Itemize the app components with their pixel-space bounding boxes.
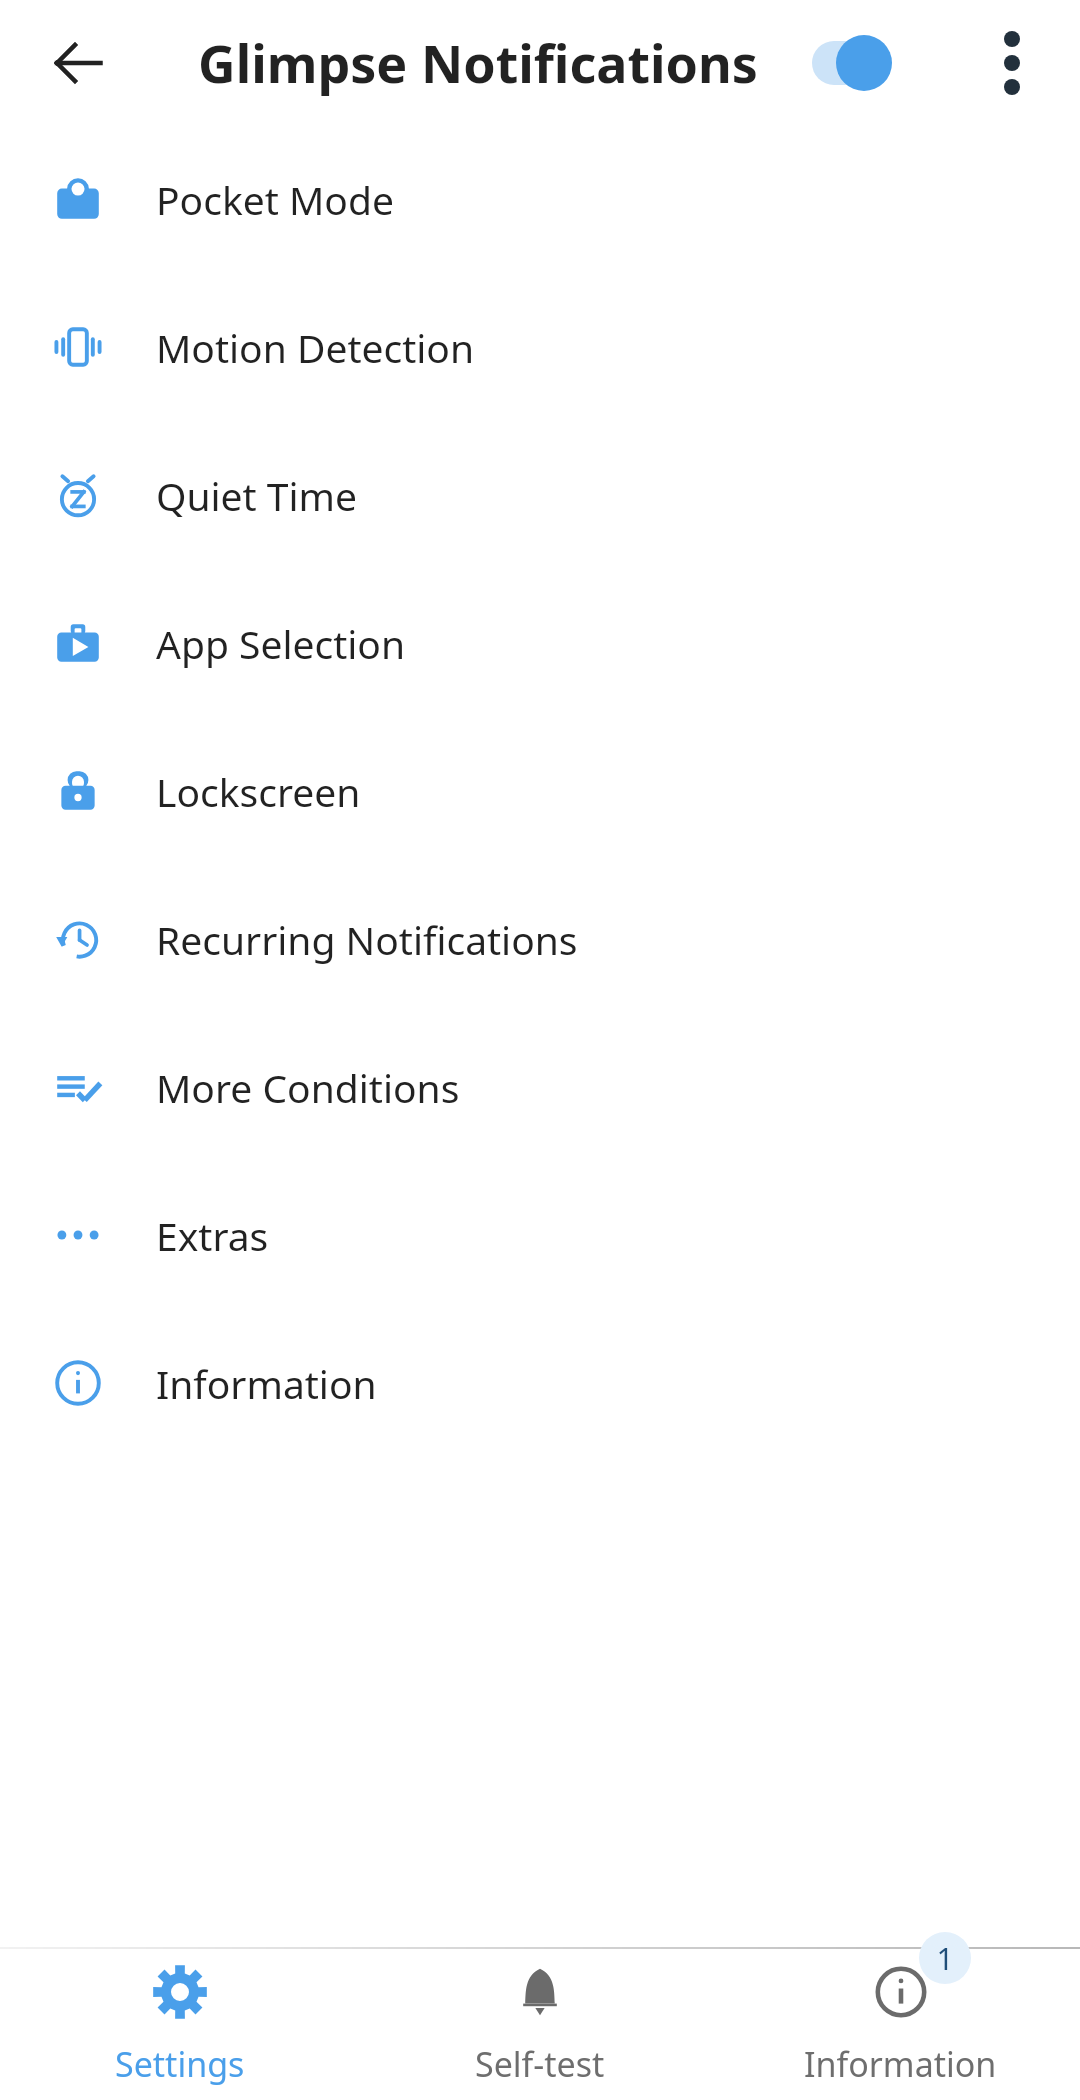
- button[interactable]: Quiet Time: [0, 421, 1080, 569]
- staticText: Glimpse Notifications: [198, 27, 758, 98]
- staticText: Extras: [156, 1209, 269, 1262]
- staticText: Lockscreen: [156, 765, 361, 818]
- button[interactable]: Recurring Notifications: [0, 865, 1080, 1013]
- button[interactable]: Information: [0, 1309, 1080, 1457]
- button[interactable]: Pocket Mode: [0, 125, 1080, 273]
- button[interactable]: More Conditions: [0, 1013, 1080, 1161]
- button[interactable]: Settings: [0, 1949, 360, 2100]
- staticText: Information: [804, 2041, 997, 2087]
- staticText: Quiet Time: [156, 469, 358, 522]
- button[interactable]: Motion Detection: [0, 273, 1080, 421]
- button[interactable]: Extras: [0, 1161, 1080, 1309]
- staticText: Settings: [115, 2041, 245, 2087]
- button[interactable]: 1: [720, 1949, 1080, 2100]
- staticText: Motion Detection: [156, 321, 475, 374]
- staticText: More Conditions: [156, 1061, 460, 1114]
- button[interactable]: Back: [28, 13, 128, 113]
- staticText: 1: [936, 1938, 954, 1979]
- staticText: App Selection: [156, 617, 406, 670]
- staticText: Recurring Notifications: [156, 913, 578, 966]
- button[interactable]: Enable notifications: [790, 13, 920, 113]
- staticText: Pocket Mode: [156, 173, 394, 226]
- staticText: Information: [156, 1357, 377, 1410]
- button[interactable]: More options: [962, 13, 1062, 113]
- button[interactable]: Lockscreen: [0, 717, 1080, 865]
- staticText: Self-test: [475, 2041, 605, 2087]
- button[interactable]: Self-test: [360, 1949, 720, 2100]
- button[interactable]: App Selection: [0, 569, 1080, 717]
